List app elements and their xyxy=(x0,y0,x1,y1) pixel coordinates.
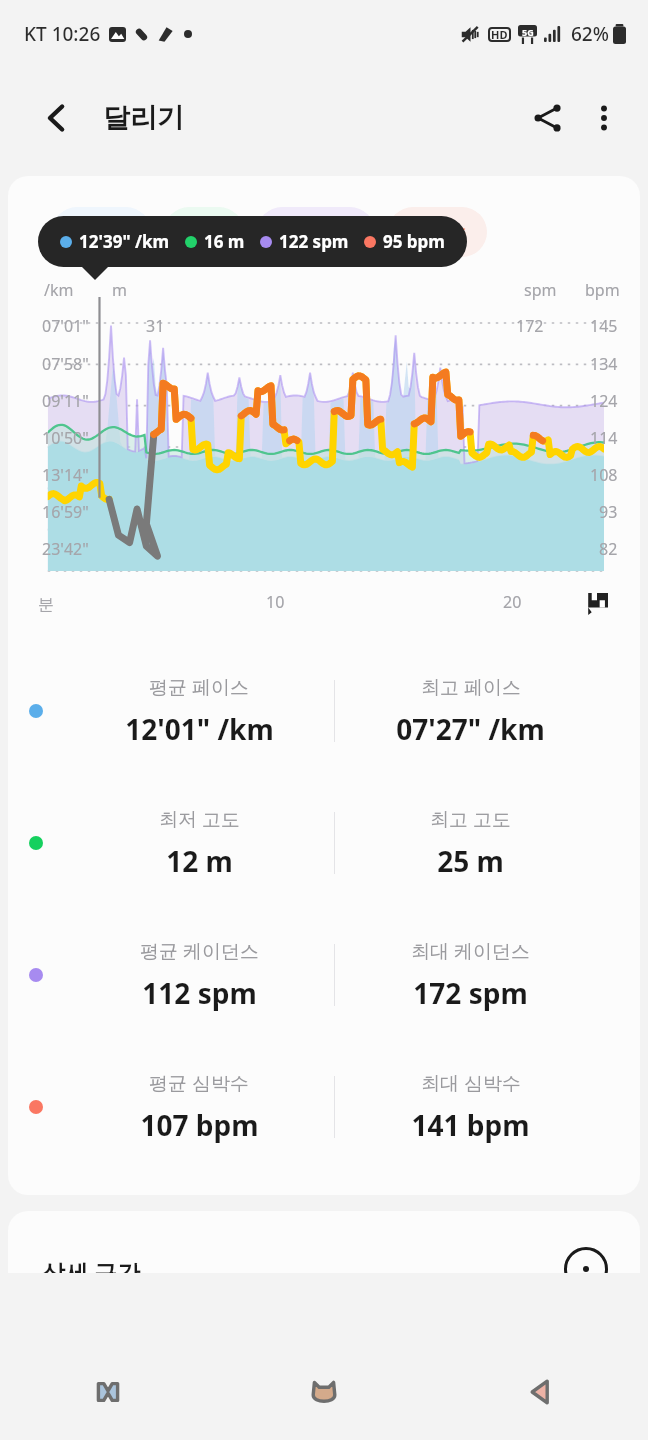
staticText: 5G xyxy=(522,26,534,38)
button[interactable]: Share xyxy=(520,90,576,146)
button[interactable]: 페이스 xyxy=(52,207,151,257)
staticText: 10'50" xyxy=(42,427,89,449)
button[interactable]: 평균 심박수 xyxy=(8,1041,640,1173)
button[interactable]: More options xyxy=(576,90,632,146)
staticText: 16'59" xyxy=(42,501,89,523)
staticText: KT 10:26 xyxy=(24,21,101,47)
button[interactable]: Recents xyxy=(0,1344,216,1440)
staticText: 최고 페이스 xyxy=(421,674,521,700)
staticText: 13'14" xyxy=(42,464,89,486)
staticText: 95 bpm xyxy=(383,230,445,253)
staticText: 134 xyxy=(590,353,618,375)
button[interactable]: Home xyxy=(216,1344,432,1440)
staticText: 최대 심박수 xyxy=(421,1070,521,1096)
staticText: 달리기 xyxy=(103,101,184,135)
staticText: 82 xyxy=(599,538,618,560)
button[interactable]: Back xyxy=(432,1344,648,1440)
button[interactable]: 평균 페이스 xyxy=(8,645,640,777)
button[interactable]: Back xyxy=(30,91,84,145)
staticText: 평균 케이던스 xyxy=(140,938,259,964)
staticText: 112 spm xyxy=(142,974,257,1012)
button[interactable]: 케이던스 xyxy=(257,207,375,257)
staticText: 141 bpm xyxy=(411,1106,530,1144)
button[interactable]: 최저 고도 xyxy=(8,777,640,909)
staticText: 최고 고도 xyxy=(430,806,511,832)
staticText: 12'39" /km xyxy=(79,230,170,253)
button[interactable]: 심박수 xyxy=(388,207,487,257)
staticText: 122 spm xyxy=(279,230,349,253)
staticText: 62% xyxy=(571,21,609,47)
staticText: 07'27" /km xyxy=(396,710,545,748)
staticText: 케이던스 xyxy=(278,220,354,244)
staticText: 172 spm xyxy=(413,974,528,1012)
staticText: HD xyxy=(491,27,508,42)
staticText: 172 xyxy=(516,315,544,337)
staticText: 124 xyxy=(590,390,618,412)
button[interactable]: 고도 xyxy=(164,207,244,257)
staticText: 10 xyxy=(266,591,285,613)
staticText: 16 m xyxy=(204,230,245,253)
staticText: 31 xyxy=(146,315,165,337)
staticText: m xyxy=(112,279,127,301)
staticText: spm xyxy=(524,279,557,301)
staticText: 심박수 xyxy=(409,220,466,244)
staticText: 분 xyxy=(38,595,54,615)
staticText: 페이스 xyxy=(73,220,130,244)
staticText: 07'01" xyxy=(42,315,89,337)
staticText: 93 xyxy=(599,501,618,523)
staticText: 09'11" xyxy=(42,390,89,412)
staticText: 12 m xyxy=(166,842,233,880)
staticText: 07'58" xyxy=(42,353,89,375)
staticText: 최저 고도 xyxy=(159,806,240,832)
staticText: 114 xyxy=(590,427,618,449)
staticText: 평균 심박수 xyxy=(149,1070,249,1096)
button[interactable]: 평균 케이던스 xyxy=(8,909,640,1041)
staticText: 고도 xyxy=(185,220,223,244)
staticText: 108 xyxy=(590,464,618,486)
staticText: 145 xyxy=(590,315,618,337)
staticText: 상세 구간 xyxy=(42,1256,140,1273)
staticText: 107 bpm xyxy=(140,1106,259,1144)
staticText: 평균 페이스 xyxy=(149,674,249,700)
staticText: 20 xyxy=(503,591,522,613)
staticText: /km xyxy=(44,279,74,301)
staticText: 23'42" xyxy=(42,538,89,560)
staticText: 12'01" /km xyxy=(125,710,274,748)
button[interactable]: 상세 구간 xyxy=(8,1211,640,1273)
staticText: bpm xyxy=(585,279,620,301)
staticText: 최대 케이던스 xyxy=(411,938,530,964)
staticText: 25 m xyxy=(437,842,504,880)
